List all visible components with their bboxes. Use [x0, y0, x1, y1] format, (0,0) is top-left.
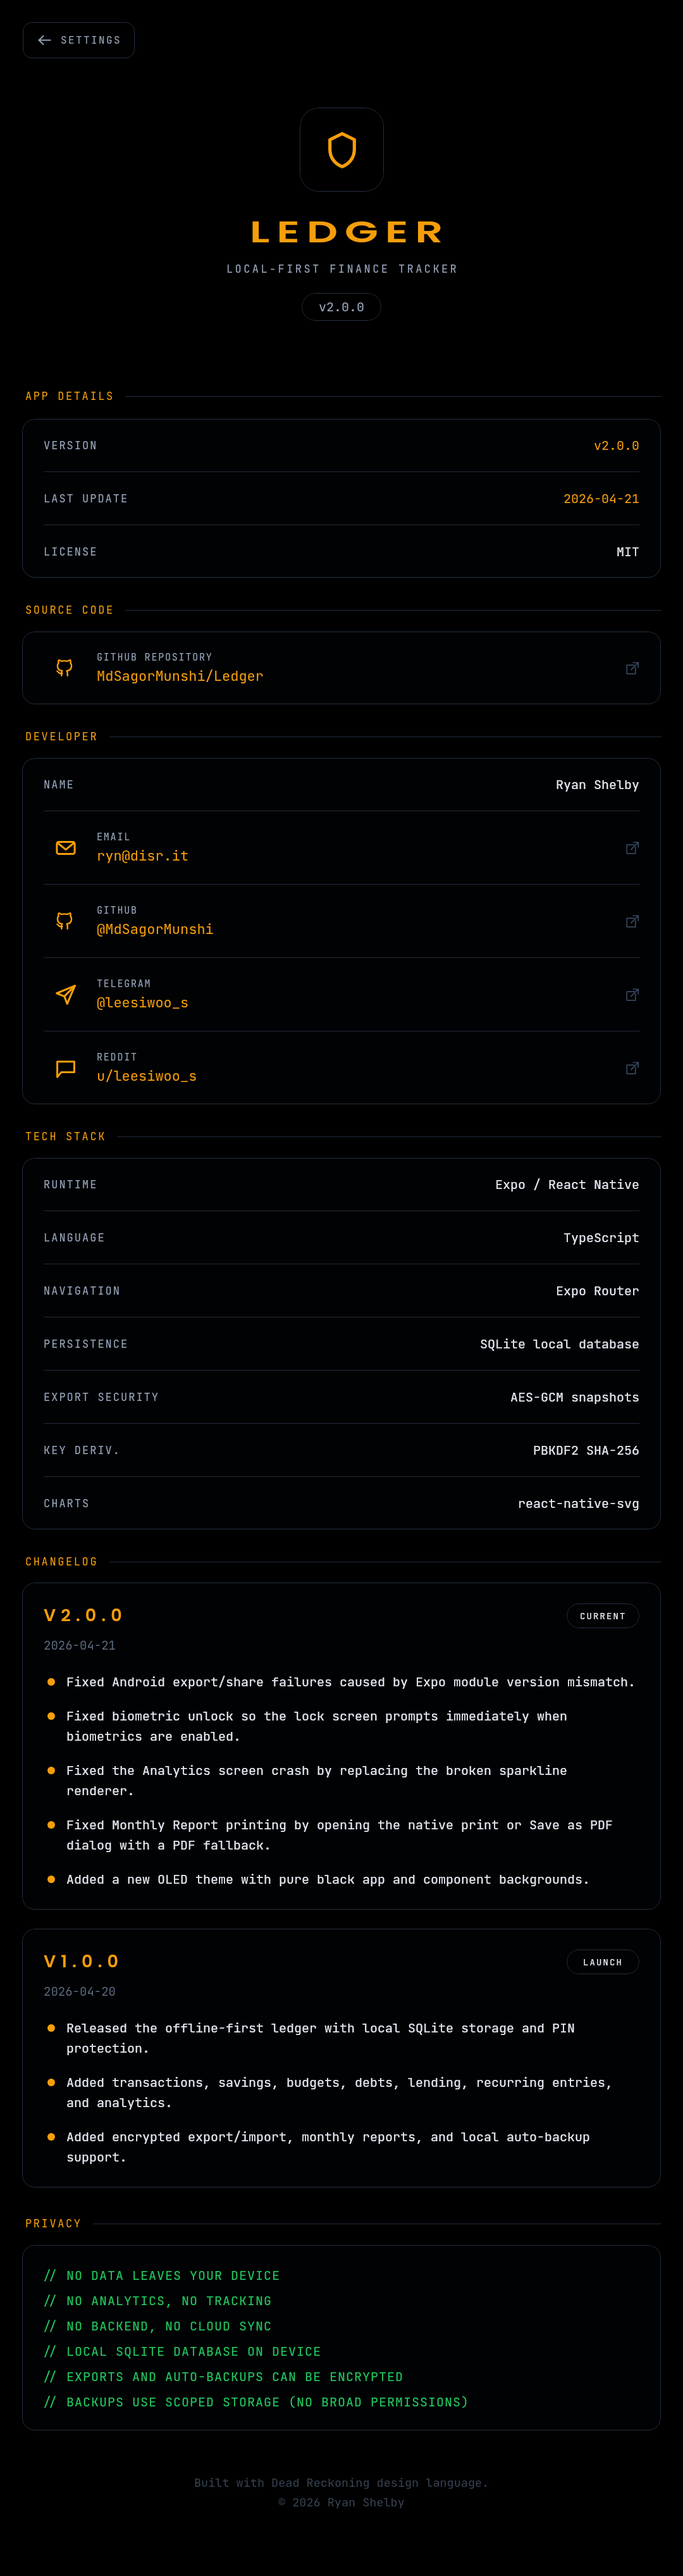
staticText: LAUNCH: [583, 1957, 623, 1968]
staticText: PRIVACY: [25, 2217, 82, 2231]
staticText: and analytics.: [66, 2094, 173, 2111]
staticText: v2.0.0: [594, 437, 639, 454]
staticText: TECH STACK: [25, 1129, 106, 1143]
button[interactable]: Open Telegram: [22, 958, 661, 1031]
staticText: MdSagorMunshi/Ledger: [97, 667, 264, 685]
staticText: VERSION: [44, 439, 98, 452]
staticText: Fixed biometric unlock so the lock scree…: [66, 1708, 567, 1724]
staticText: react-native-svg: [518, 1495, 639, 1512]
staticText: PERSISTENCE: [44, 1337, 129, 1351]
staticText: // BACKUPS USE SCOPED STORAGE (NO BROAD …: [42, 2394, 469, 2410]
staticText: // NO BACKEND, NO CLOUD SYNC: [42, 2318, 272, 2334]
staticText: Released the offline-first ledger with l…: [66, 2020, 575, 2036]
staticText: CURRENT: [580, 1610, 627, 1622]
staticText: @leesiwoo_s: [97, 993, 189, 1012]
staticText: SETTINGS: [61, 34, 122, 47]
button[interactable]: SETTINGS: [23, 22, 135, 58]
button[interactable]: LAUNCH: [567, 1950, 639, 1974]
staticText: PBKDF2 SHA-256: [533, 1442, 639, 1459]
staticText: LOCAL-FIRST FINANCE TRACKER: [226, 262, 459, 276]
staticText: 2026-04-21: [563, 490, 639, 507]
staticText: dialog with a PDF fallback.: [66, 1837, 271, 1853]
staticText: APP DETAILS: [25, 389, 114, 403]
staticText: Fixed Monthly Report printing by opening…: [66, 1817, 613, 1833]
button[interactable]: CURRENT: [567, 1603, 639, 1628]
staticText: Expo / React Native: [495, 1176, 639, 1193]
button[interactable]: Open Reddit: [22, 1031, 661, 1104]
staticText: NAME: [44, 778, 75, 792]
staticText: DEVELOPER: [25, 730, 99, 744]
staticText: RUNTIME: [44, 1178, 98, 1192]
staticText: REDDIT: [97, 1051, 138, 1064]
staticText: Fixed the Analytics screen crash by repl…: [66, 1762, 567, 1779]
staticText: Expo Router: [556, 1283, 639, 1299]
button[interactable]: Open GitHub repository: [22, 632, 661, 704]
staticText: EMAIL: [97, 831, 132, 843]
staticText: Added transactions, savings, budgets, de…: [66, 2074, 613, 2091]
staticText: support.: [66, 2149, 127, 2165]
staticText: biometrics are enabled.: [66, 1728, 241, 1745]
staticText: TELEGRAM: [97, 978, 152, 990]
staticText: // EXPORTS AND AUTO-BACKUPS CAN BE ENCRY…: [42, 2368, 403, 2385]
staticText: KEY DERIV.: [44, 1443, 121, 1457]
staticText: u/leesiwoo_s: [97, 1067, 197, 1085]
staticText: GITHUB: [97, 904, 138, 917]
staticText: GITHUB REPOSITORY: [97, 651, 213, 664]
staticText: // NO ANALYTICS, NO TRACKING: [42, 2293, 272, 2309]
staticText: Ryan Shelby: [556, 776, 639, 793]
staticText: // LOCAL SQLITE DATABASE ON DEVICE: [42, 2343, 321, 2360]
staticText: EXPORT SECURITY: [44, 1390, 159, 1404]
staticText: LEDGER: [250, 211, 450, 252]
staticText: MIT: [617, 544, 639, 560]
staticText: CHANGELOG: [25, 1555, 99, 1569]
staticText: TypeScript: [563, 1229, 639, 1246]
staticText: V2.0.0: [44, 1603, 127, 1624]
staticText: ryn@disr.it: [97, 847, 189, 865]
staticText: Built with Dead Reckoning design languag…: [194, 2475, 489, 2490]
button[interactable]: Open GitHub profile: [22, 885, 661, 957]
staticText: V1.0.0: [44, 1950, 123, 1970]
staticText: LANGUAGE: [44, 1231, 106, 1245]
staticText: © 2026 Ryan Shelby: [278, 2494, 405, 2510]
staticText: 2026-04-20: [44, 1984, 116, 2000]
staticText: AES-GCM snapshots: [510, 1389, 639, 1405]
staticText: // NO DATA LEAVES YOUR DEVICE: [42, 2267, 280, 2284]
staticText: LAST UPDATE: [44, 492, 129, 506]
staticText: Fixed Android export/share failures caus…: [66, 1674, 636, 1690]
staticText: SQLite local database: [480, 1336, 639, 1352]
staticText: Added a new OLED theme with pure black a…: [66, 1871, 590, 1888]
staticText: 2026-04-21: [44, 1638, 116, 1653]
staticText: @MdSagorMunshi: [97, 920, 214, 938]
staticText: NAVIGATION: [44, 1284, 121, 1298]
staticText: SOURCE CODE: [25, 603, 114, 617]
staticText: v2.0.0: [319, 299, 364, 315]
staticText: CHARTS: [44, 1496, 90, 1510]
staticText: protection.: [66, 2040, 150, 2056]
staticText: Added encrypted export/import, monthly r…: [66, 2129, 590, 2145]
staticText: LICENSE: [44, 545, 98, 559]
staticText: renderer.: [66, 1783, 135, 1799]
button[interactable]: Open email: [22, 811, 661, 884]
